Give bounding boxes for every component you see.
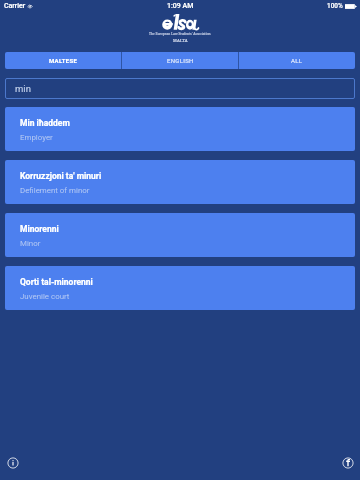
staticText: The European Law Students' Association [149, 32, 211, 36]
staticText: Qorti tal-minorenni [20, 277, 93, 287]
staticText: 100% [327, 2, 343, 10]
button[interactable]: MALTESE [5, 52, 121, 69]
button[interactable]: Info [1, 451, 24, 474]
button[interactable]: Min iħaddem [5, 107, 355, 151]
staticText: MALTESE [49, 57, 78, 64]
staticText: Carrier [4, 2, 26, 10]
button[interactable]: Qorti tal-minorenni [5, 266, 355, 310]
staticText: ALL [291, 57, 303, 64]
staticText: Defilement of minor [20, 186, 90, 195]
staticText: min [15, 83, 31, 94]
button[interactable]: Minorenni [5, 213, 355, 257]
staticText: Juvenile court [20, 292, 70, 301]
staticText: MALTA [173, 38, 188, 43]
button[interactable]: ENGLISH [122, 52, 238, 69]
button[interactable]: ALL [239, 52, 355, 69]
button[interactable]: Facebook [336, 451, 359, 474]
button[interactable]: min [5, 78, 355, 99]
staticText: 1:09 AM [167, 2, 194, 10]
staticText: Korruzzjoni ta' minuri [20, 171, 102, 181]
staticText: ENGLISH [167, 57, 194, 64]
staticText: Min iħaddem [20, 118, 70, 128]
staticText: Employer [20, 133, 53, 142]
staticText: Minorenni [20, 224, 59, 234]
staticText: Minor [20, 239, 41, 248]
button[interactable]: Korruzzjoni ta' minuri [5, 160, 355, 204]
